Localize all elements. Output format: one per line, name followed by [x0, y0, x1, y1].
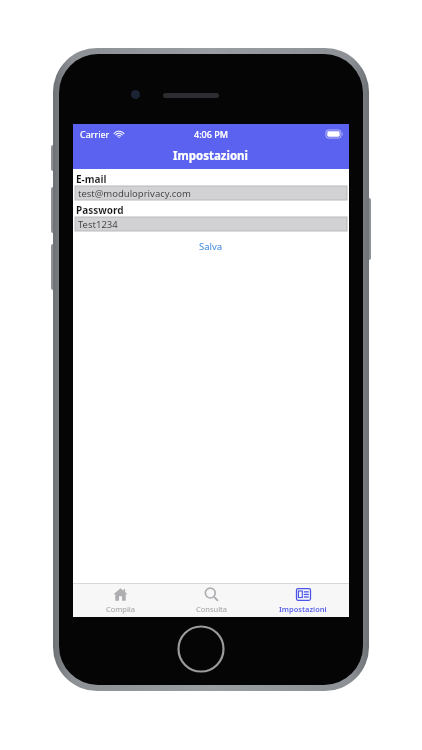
button[interactable]: test@moduloprivacy.com: [75, 186, 347, 200]
staticText: Carrier: [80, 128, 110, 140]
staticText: Consulta: [196, 604, 227, 614]
staticText: Salva: [199, 240, 223, 253]
staticText: E-mail: [76, 172, 107, 186]
staticText: Impostazioni: [279, 604, 327, 614]
button[interactable]: Compila: [75, 584, 165, 617]
staticText: 4:06 PM: [194, 128, 228, 140]
staticText: test@moduloprivacy.com: [78, 187, 191, 200]
staticText: Test1234: [78, 218, 118, 231]
button[interactable]: Impostazioni: [258, 584, 348, 617]
button[interactable]: Consulta: [166, 584, 256, 617]
button[interactable]: Salva: [73, 238, 349, 254]
staticText: Impostazioni: [173, 148, 249, 164]
button[interactable]: Test1234: [75, 217, 347, 231]
staticText: Compila: [106, 604, 135, 614]
staticText: Password: [76, 203, 124, 217]
